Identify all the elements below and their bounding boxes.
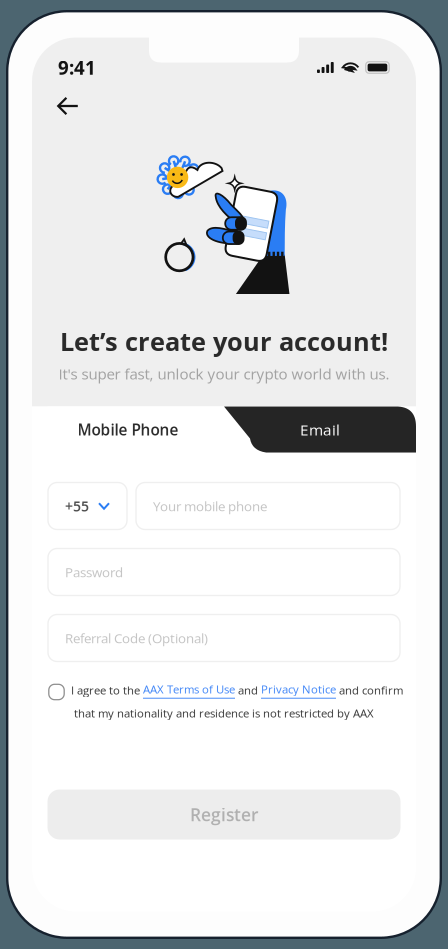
staticText: It's super fast, unlock your crypto worl…	[58, 363, 389, 384]
staticText: Privacy Notice	[261, 681, 336, 697]
button[interactable]: AAX Terms of Use	[143, 681, 235, 699]
staticText: +55	[65, 496, 89, 516]
button[interactable]: Register	[47, 789, 400, 839]
button[interactable]: +55	[48, 482, 127, 529]
staticText: that my nationality and residence is not…	[74, 705, 374, 721]
staticText: and	[235, 682, 261, 698]
button[interactable]: Mobile Phone	[32, 406, 224, 452]
button[interactable]: Email	[224, 406, 416, 452]
staticText: Let’s create your account!	[60, 324, 388, 358]
staticText: Your mobile phone	[153, 497, 267, 515]
staticText: 9:41	[58, 55, 96, 80]
button[interactable]: Agree to terms and conditions	[48, 683, 65, 700]
staticText: Email	[300, 419, 340, 440]
staticText: Referral Code (Optional)	[65, 629, 208, 647]
staticText: I agree to the	[71, 682, 143, 698]
staticText: Register	[190, 803, 258, 826]
staticText: Mobile Phone	[77, 419, 178, 440]
staticText: AAX Terms of Use	[143, 681, 235, 697]
button[interactable]: Privacy Notice	[261, 681, 336, 699]
staticText: Password	[65, 563, 123, 581]
button[interactable]: Back	[46, 86, 90, 125]
staticText: and confirm	[336, 682, 403, 698]
